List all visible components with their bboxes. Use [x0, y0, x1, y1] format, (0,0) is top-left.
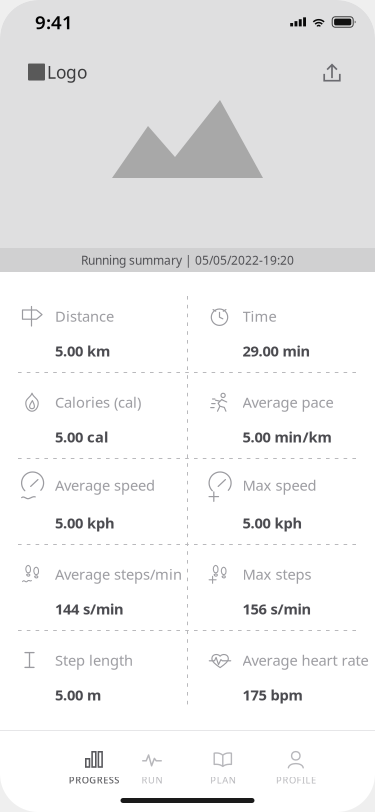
- staticText: PROGRESS: [69, 774, 119, 786]
- staticText: Logo: [47, 60, 87, 83]
- staticText: PLAN: [210, 774, 236, 786]
- button[interactable]: RUN: [134, 750, 170, 786]
- button[interactable]: PROFILE: [272, 750, 320, 786]
- staticText: Max steps: [242, 564, 311, 584]
- staticText: 5.00 km: [55, 341, 110, 360]
- staticText: 156 s/min: [242, 599, 311, 618]
- staticText: 175 bpm: [242, 685, 302, 704]
- button[interactable]: PLAN: [203, 750, 243, 786]
- staticText: Average steps/min: [55, 564, 182, 584]
- staticText: 144 s/min: [55, 599, 124, 618]
- staticText: PROFILE: [276, 774, 316, 786]
- staticText: 5.00 kph: [55, 513, 115, 532]
- staticText: 5.00 cal: [55, 427, 108, 446]
- staticText: Average heart rate: [242, 650, 368, 670]
- staticText: RUN: [141, 774, 162, 786]
- staticText: 5.00 kph: [242, 513, 302, 532]
- staticText: Step length: [55, 650, 133, 670]
- button[interactable]: Share: [323, 63, 340, 80]
- staticText: 29.00 min: [242, 341, 310, 360]
- staticText: Calories (cal): [55, 392, 141, 412]
- staticText: Distance: [55, 306, 114, 326]
- button[interactable]: Logo: [28, 60, 87, 83]
- staticText: Time: [242, 306, 276, 326]
- button[interactable]: PROGRESS: [66, 750, 122, 786]
- staticText: Average speed: [55, 475, 155, 495]
- staticText: 9:41: [35, 10, 73, 34]
- staticText: Running summary | 05/05/2022-19:20: [81, 252, 294, 268]
- staticText: Max speed: [242, 475, 316, 495]
- staticText: Average pace: [242, 392, 333, 412]
- staticText: 5.00 min/km: [242, 427, 331, 446]
- staticText: 5.00 m: [55, 685, 101, 704]
